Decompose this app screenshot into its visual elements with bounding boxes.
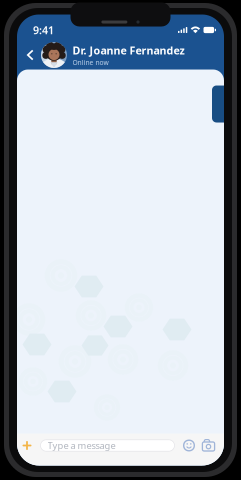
button[interactable]: Dr. Joanne Fernandez [41, 41, 216, 69]
staticText: 9:41 [33, 23, 54, 37]
button[interactable]: Emoji [181, 438, 196, 452]
button[interactable]: Add attachment [20, 438, 34, 452]
button[interactable]: Type a message [40, 440, 174, 451]
staticText: Type a message [47, 439, 115, 452]
button[interactable]: Camera [201, 438, 216, 452]
button[interactable]: Back [22, 41, 39, 69]
staticText: Dr. Joanne Fernandez [72, 43, 184, 57]
staticText: Online now [72, 58, 108, 67]
